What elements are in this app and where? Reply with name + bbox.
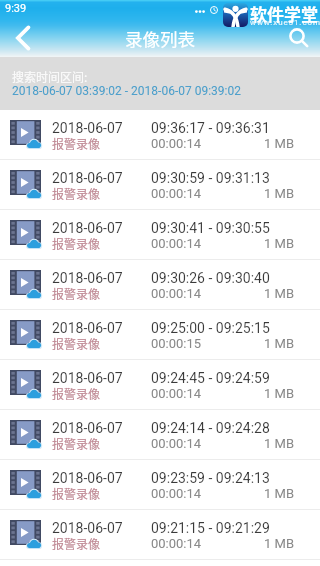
- staticText: 1 MB: [0, 136, 294, 151]
- staticText: 09:24:14 - 09:24:28: [151, 420, 270, 436]
- staticText: 1 MB: [0, 186, 294, 201]
- staticText: 1 MB: [0, 236, 294, 251]
- staticText: 00:00:14: [151, 286, 202, 301]
- staticText: 1 MB: [0, 436, 294, 451]
- staticText: 报警录像: [52, 485, 101, 502]
- button[interactable]: Search: [283, 22, 315, 54]
- staticText: 1 MB: [0, 486, 294, 501]
- staticText: 09:30:26 - 09:30:40: [151, 270, 270, 286]
- staticText: 2018-06-07: [52, 470, 123, 486]
- staticText: 00:00:14: [151, 536, 202, 551]
- staticText: 2018-06-07: [52, 520, 123, 536]
- staticText: 录像列表: [0, 26, 320, 51]
- staticText: 报警录像: [52, 185, 101, 202]
- staticText: 09:24:45 - 09:24:59: [151, 370, 270, 386]
- button[interactable]: 2018-06-07: [0, 110, 320, 160]
- staticText: 2018-06-07: [52, 270, 123, 286]
- staticText: 2018-06-07: [52, 170, 123, 186]
- staticText: 报警录像: [52, 135, 101, 152]
- staticText: 09:30:41 - 09:30:55: [151, 220, 270, 236]
- staticText: 2018-06-07 03:39:02 - 2018-06-07 09:39:0…: [12, 84, 241, 98]
- staticText: 1 MB: [0, 336, 294, 351]
- button[interactable]: 2018-06-07: [0, 460, 320, 510]
- button[interactable]: 2018-06-07: [0, 360, 320, 410]
- button[interactable]: 2018-06-07: [0, 260, 320, 310]
- staticText: www.xue51.com: [250, 18, 320, 27]
- staticText: 软件学堂: [250, 1, 318, 26]
- staticText: 报警录像: [52, 535, 101, 552]
- staticText: 00:00:14: [151, 136, 202, 151]
- staticText: 09:21:15 - 09:21:29: [151, 520, 270, 536]
- staticText: 00:00:14: [151, 186, 202, 201]
- staticText: 09:36:17 - 09:36:31: [151, 120, 270, 136]
- staticText: 报警录像: [52, 335, 101, 352]
- staticText: 报警录像: [52, 435, 101, 452]
- staticText: 1 MB: [0, 536, 294, 551]
- button[interactable]: 2018-06-07: [0, 410, 320, 460]
- staticText: 00:00:15: [151, 336, 202, 351]
- staticText: 2018-06-07: [52, 320, 123, 336]
- staticText: 00:00:14: [151, 486, 202, 501]
- staticText: 09:23:59 - 09:24:13: [151, 470, 270, 486]
- staticText: 1 MB: [0, 386, 294, 401]
- staticText: 09:25:00 - 09:25:15: [151, 320, 270, 336]
- button[interactable]: 2018-06-07: [0, 510, 320, 560]
- staticText: 2018-06-07: [52, 120, 123, 136]
- button[interactable]: Back: [7, 22, 39, 54]
- staticText: 09:30:59 - 09:31:13: [151, 170, 270, 186]
- staticText: 1 MB: [0, 286, 294, 301]
- staticText: 2018-06-07: [52, 420, 123, 436]
- staticText: 报警录像: [52, 285, 101, 302]
- staticText: 00:00:14: [151, 386, 202, 401]
- button[interactable]: 2018-06-07: [0, 210, 320, 260]
- staticText: 2018-06-07: [52, 220, 123, 236]
- staticText: 00:00:14: [151, 436, 202, 451]
- staticText: 报警录像: [52, 385, 101, 402]
- staticText: 00:00:14: [151, 236, 202, 251]
- staticText: 9:39: [5, 2, 27, 15]
- button[interactable]: 2018-06-07: [0, 160, 320, 210]
- button[interactable]: 2018-06-07: [0, 310, 320, 360]
- staticText: 搜索时间区间:: [12, 68, 88, 85]
- staticText: 报警录像: [52, 235, 101, 252]
- staticText: 2018-06-07: [52, 370, 123, 386]
